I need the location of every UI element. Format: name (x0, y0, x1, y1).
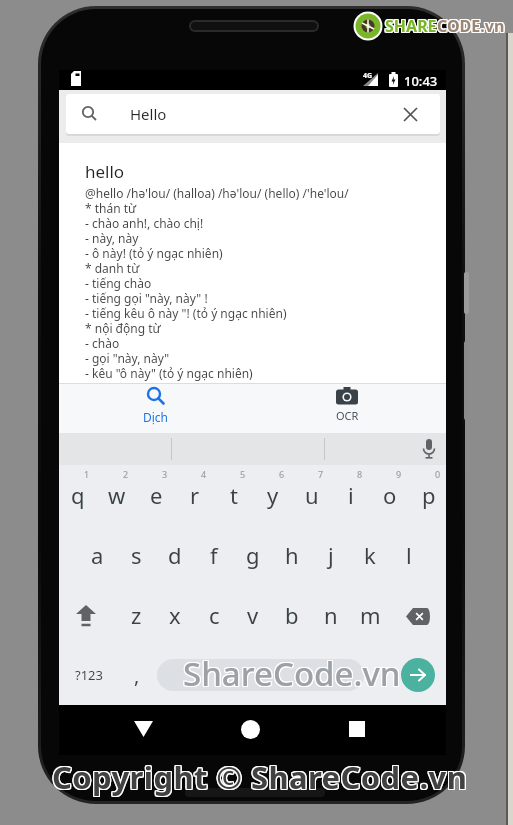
staticText: j (328, 540, 334, 570)
button[interactable]: k (351, 536, 389, 574)
staticText: Hello (130, 104, 167, 124)
staticText: hello (85, 160, 125, 183)
button[interactable]: l (390, 536, 428, 574)
staticText: s (131, 540, 142, 570)
staticText: c (209, 600, 220, 630)
button[interactable] (421, 439, 437, 460)
button[interactable] (157, 659, 364, 691)
button[interactable]: y (254, 476, 292, 514)
staticText: ?123 (75, 666, 103, 684)
staticText: 2 (123, 468, 129, 480)
button[interactable]: OCR (313, 386, 381, 432)
staticText: CODE.vn (438, 15, 506, 37)
staticText: ShareCode.vn (182, 652, 400, 697)
button[interactable]: t (215, 476, 253, 514)
button[interactable] (121, 707, 165, 751)
staticText: 0 (435, 468, 441, 480)
staticText: ShareCode.vn (182, 651, 400, 696)
staticText: SHARE (385, 14, 437, 36)
staticText: l (406, 540, 412, 570)
staticText: ShareCode.vn (182, 650, 400, 695)
button[interactable]: s (117, 536, 155, 574)
staticText: a (91, 540, 104, 570)
button[interactable] (228, 707, 272, 751)
button[interactable]: b (273, 596, 311, 634)
button[interactable]: Hello (66, 94, 440, 134)
button[interactable]: , (118, 656, 156, 694)
button[interactable]: h (273, 536, 311, 574)
staticText: 7 (318, 468, 324, 480)
staticText: 9 (396, 468, 402, 480)
button[interactable]: c (195, 596, 233, 634)
staticText: Copyright © ShareCode.vn (51, 757, 467, 799)
button[interactable] (397, 597, 439, 635)
staticText: Copyright © ShareCode.vn (51, 756, 467, 798)
staticText: 3 (162, 468, 168, 480)
staticText: f (210, 540, 218, 570)
button[interactable] (335, 707, 379, 751)
staticText: Dịch (143, 409, 169, 425)
staticText: 1 (84, 468, 90, 480)
staticText: SHARE (386, 16, 438, 38)
staticText: 4G (363, 71, 373, 81)
button[interactable]: d (156, 536, 194, 574)
staticText: CODE.vn (438, 16, 506, 38)
button[interactable]: i (332, 476, 370, 514)
staticText: CODE.vn (438, 14, 506, 36)
button[interactable]: p (410, 476, 448, 514)
staticText: g (246, 540, 260, 570)
staticText: SHARE (386, 15, 438, 37)
staticText: SHARE (386, 14, 438, 36)
staticText: t (230, 480, 238, 510)
staticText: d (168, 540, 182, 570)
staticText: @hello /hə'lou/ (halloa) /hə'lou/ (hello… (85, 185, 349, 381)
staticText: Copyright © ShareCode.vn (53, 757, 469, 799)
staticText: p (422, 480, 436, 510)
button[interactable] (67, 597, 105, 635)
staticText: q (71, 480, 85, 510)
button[interactable]: w (98, 476, 136, 514)
button[interactable]: v (234, 596, 272, 634)
staticText: y (267, 480, 279, 510)
staticText: k (364, 540, 376, 570)
button[interactable]: j (312, 536, 350, 574)
button[interactable]: Dịch (122, 386, 190, 432)
staticText: Copyright © ShareCode.vn (53, 756, 469, 798)
staticText: CODE.vn (436, 16, 504, 38)
staticText: , (134, 662, 140, 689)
button[interactable]: f (195, 536, 233, 574)
button[interactable]: a (78, 536, 116, 574)
button[interactable]: r (176, 476, 214, 514)
button[interactable]: m (351, 596, 389, 634)
button[interactable]: ?123 (67, 657, 111, 693)
staticText: z (131, 600, 142, 630)
staticText: Copyright © ShareCode.vn (53, 755, 469, 797)
button[interactable]: x (156, 596, 194, 634)
button[interactable]: e (137, 476, 175, 514)
staticText: ShareCode.vn (183, 650, 401, 695)
button[interactable]: q (59, 476, 97, 514)
staticText: 4 (201, 468, 207, 480)
staticText: b (285, 600, 299, 630)
staticText: CODE.vn (436, 14, 504, 36)
staticText: ShareCode.vn (184, 652, 402, 697)
staticText: SHARE (384, 16, 436, 38)
button[interactable]: u (293, 476, 331, 514)
staticText: u (305, 480, 319, 510)
staticText: Copyright © ShareCode.vn (52, 756, 468, 798)
button[interactable]: z (117, 596, 155, 634)
staticText: e (150, 480, 163, 510)
staticText: n (324, 600, 338, 630)
staticText: ShareCode.vn (184, 650, 402, 695)
staticText: Copyright © ShareCode.vn (52, 755, 468, 797)
button[interactable]: n (312, 596, 350, 634)
staticText: w (108, 480, 126, 510)
staticText: SHARE (384, 15, 436, 37)
staticText: SHARE (385, 15, 437, 37)
button[interactable]: o (371, 476, 409, 514)
button[interactable] (388, 94, 432, 134)
staticText: Copyright © ShareCode.vn (52, 757, 468, 799)
button[interactable]: g (234, 536, 272, 574)
button[interactable] (401, 658, 435, 692)
staticText: OCR (336, 408, 359, 423)
